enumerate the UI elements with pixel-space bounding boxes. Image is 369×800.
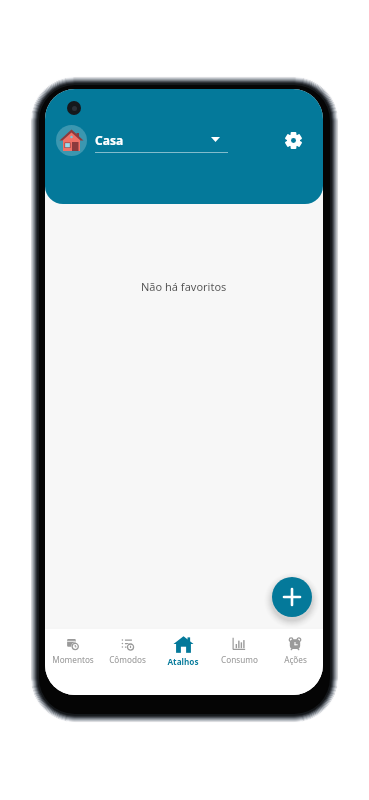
button[interactable]: Adicionar: [272, 577, 312, 617]
staticText: Não há favoritos: [141, 279, 227, 294]
button[interactable]: Cômodos: [100, 629, 155, 695]
staticText: Ações: [284, 654, 307, 665]
button[interactable]: Momentos: [45, 629, 100, 695]
staticText: Momentos: [52, 654, 94, 665]
button[interactable]: Atalhos: [155, 629, 211, 695]
staticText: Casa: [95, 132, 124, 148]
staticText: Atalhos: [167, 656, 199, 667]
button[interactable]: Ações: [267, 629, 323, 695]
button[interactable]: Configurações: [276, 123, 311, 158]
staticText: Cômodos: [109, 654, 146, 665]
staticText: Consumo: [221, 654, 258, 665]
button[interactable]: Casa: [56, 125, 228, 156]
button[interactable]: Consumo: [211, 629, 267, 695]
